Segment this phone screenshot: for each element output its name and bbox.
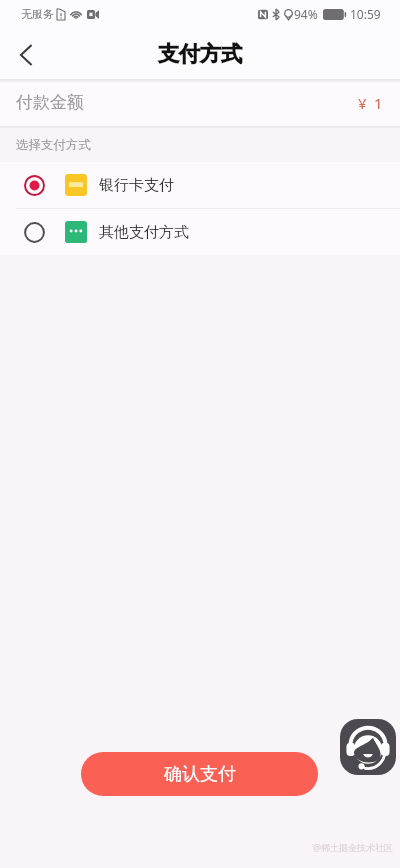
staticText: 其他支付方式 [99, 223, 189, 242]
staticText: 10:59 [350, 6, 381, 22]
button[interactable]: 确认支付 [81, 752, 318, 796]
staticText: 1 [374, 93, 383, 113]
staticText: 银行卡支付 [99, 176, 174, 195]
staticText: 无服务 [21, 7, 54, 21]
button[interactable]: Customer service [340, 719, 396, 775]
staticText: @稀土掘金技术社区 [313, 841, 394, 853]
staticText: 选择支付方式 [16, 137, 91, 153]
button[interactable]: Back [3, 32, 49, 78]
staticText: 付款金额 [16, 92, 84, 113]
button[interactable]: 银行卡支付 [0, 162, 400, 208]
button[interactable]: 其他支付方式 [0, 209, 400, 255]
staticText: 确认支付 [164, 763, 236, 786]
staticText: 94% [294, 6, 318, 22]
staticText: ¥ [358, 93, 367, 113]
staticText: 支付方式 [158, 41, 242, 67]
